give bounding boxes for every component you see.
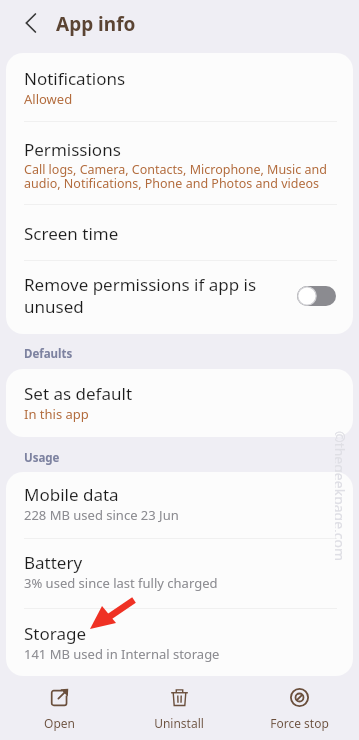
button[interactable]: Mobile data <box>6 472 353 538</box>
staticText: ©thegeekpage.com <box>335 431 349 562</box>
button[interactable]: Set as default <box>6 369 353 437</box>
staticText: 228 MB used since 23 Jun <box>24 506 179 524</box>
staticText: Notifications <box>24 67 126 90</box>
staticText: 3% used since last fully charged <box>24 574 218 592</box>
staticText: Remove permissions if app is unused <box>24 273 264 318</box>
staticText: In this app <box>24 405 89 423</box>
staticText: Storage <box>24 622 87 645</box>
staticText: Uninstall <box>154 715 204 731</box>
staticText: Usage <box>24 450 60 466</box>
staticText: Allowed <box>24 90 73 108</box>
button[interactable]: Back <box>9 1 53 45</box>
staticText: Defaults <box>24 346 73 362</box>
staticText: Force stop <box>270 715 329 731</box>
button[interactable]: Battery <box>6 539 353 608</box>
staticText: App info <box>56 11 136 37</box>
button[interactable]: Permissions <box>6 122 353 204</box>
staticText: Set as default <box>24 382 133 405</box>
staticText: Call logs, Camera, Contacts, Microphone,… <box>24 161 337 192</box>
button[interactable]: Notifications <box>6 53 353 121</box>
button[interactable]: Force stop <box>239 676 359 731</box>
button[interactable]: Uninstall <box>119 676 239 731</box>
staticText: Open <box>44 715 75 731</box>
staticText: Permissions <box>24 138 121 161</box>
staticText: Mobile data <box>24 483 119 506</box>
staticText: Screen time <box>24 222 119 245</box>
button[interactable]: Open <box>0 676 119 731</box>
button[interactable]: Remove permissions if app is unused <box>6 261 353 334</box>
button[interactable]: Storage <box>6 609 353 676</box>
staticText: Battery <box>24 551 83 574</box>
staticText: 141 MB used in Internal storage <box>24 645 220 663</box>
button[interactable]: Screen time <box>6 205 353 260</box>
